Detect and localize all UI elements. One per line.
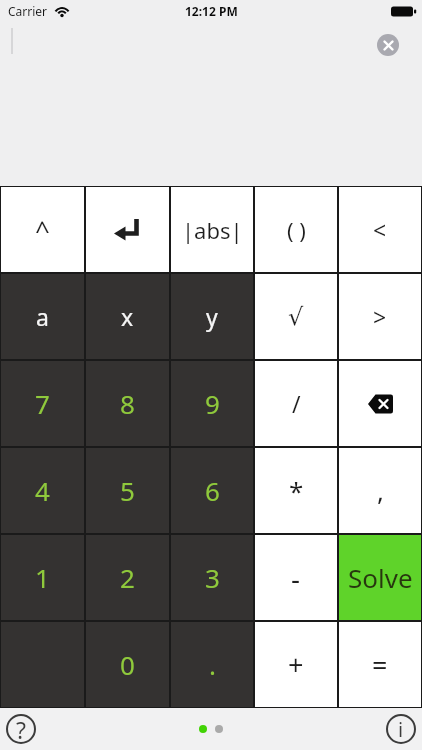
staticText: =	[372, 646, 388, 683]
button[interactable]: x	[85, 273, 170, 360]
staticText: 5	[120, 473, 135, 508]
staticText: ,	[377, 473, 384, 508]
button[interactable]: >	[338, 273, 422, 360]
staticText: /	[292, 388, 301, 419]
button[interactable]	[377, 34, 399, 56]
staticText: 6	[205, 473, 220, 508]
button[interactable]: Solve	[338, 534, 422, 621]
button[interactable]: *	[254, 447, 338, 534]
button[interactable]	[215, 725, 223, 733]
button[interactable]: 0	[85, 621, 170, 708]
button[interactable]: ( )	[254, 186, 338, 273]
button[interactable]: 8	[85, 360, 170, 447]
staticText: √	[288, 303, 304, 331]
staticText: i	[398, 716, 404, 743]
button[interactable]	[199, 725, 207, 733]
staticText: x	[121, 301, 134, 332]
button[interactable]: 6	[170, 447, 254, 534]
staticText: Solve	[348, 560, 413, 595]
button[interactable]: ^	[0, 186, 85, 273]
button[interactable]	[0, 621, 85, 708]
staticText: ^	[35, 212, 50, 247]
staticText: >	[373, 301, 387, 332]
staticText: -	[291, 559, 301, 597]
button[interactable]: a	[0, 273, 85, 360]
staticText: ?	[16, 714, 26, 744]
staticText: |abs|	[182, 215, 243, 245]
button[interactable]: i	[386, 714, 416, 744]
button[interactable]: 7	[0, 360, 85, 447]
staticText: 0	[120, 647, 135, 682]
staticText: 1	[35, 560, 50, 595]
button[interactable]: -	[254, 534, 338, 621]
staticText: 12:12 PM	[185, 3, 238, 19]
button[interactable]: 4	[0, 447, 85, 534]
staticText: 9	[205, 386, 220, 421]
button[interactable]: 9	[170, 360, 254, 447]
button[interactable]: +	[254, 621, 338, 708]
staticText: ( )	[287, 215, 306, 245]
staticText: 7	[35, 386, 50, 421]
staticText: 8	[120, 386, 135, 421]
staticText: <	[373, 214, 387, 245]
staticText: Carrier	[8, 3, 48, 19]
button[interactable]: .	[170, 621, 254, 708]
button[interactable]: 2	[85, 534, 170, 621]
button[interactable]	[85, 186, 170, 273]
button[interactable]	[338, 360, 422, 447]
staticText: a	[36, 301, 49, 332]
staticText: 4	[35, 473, 50, 508]
button[interactable]: y	[170, 273, 254, 360]
staticText: 2	[120, 560, 135, 595]
staticText: 3	[205, 560, 220, 595]
button[interactable]: ,	[338, 447, 422, 534]
button[interactable]: =	[338, 621, 422, 708]
staticText: *	[289, 473, 304, 508]
button[interactable]: <	[338, 186, 422, 273]
button[interactable]: 3	[170, 534, 254, 621]
button[interactable]: 1	[0, 534, 85, 621]
staticText: +	[288, 646, 304, 683]
button[interactable]: ?	[6, 714, 36, 744]
staticText: y	[206, 301, 218, 332]
button[interactable]: 5	[85, 447, 170, 534]
button[interactable]: /	[254, 360, 338, 447]
staticText: .	[209, 647, 216, 682]
button[interactable]: |abs|	[170, 186, 254, 273]
button[interactable]: √	[254, 273, 338, 360]
